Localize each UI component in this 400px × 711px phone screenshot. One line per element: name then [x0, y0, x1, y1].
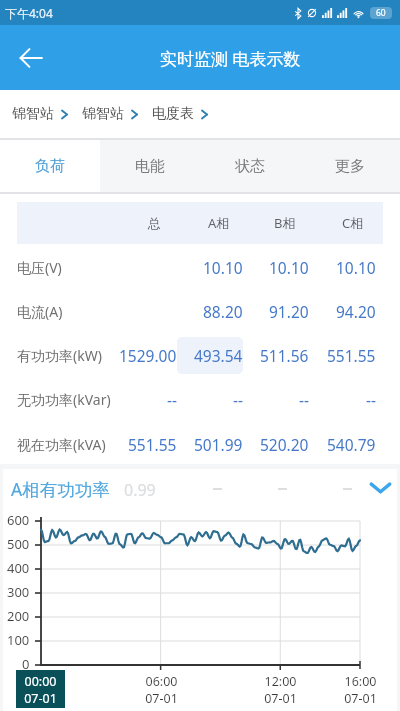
staticText: 更多 — [335, 157, 365, 176]
staticText: 下午4:04 — [5, 5, 53, 21]
staticText: 88.20 — [203, 301, 243, 322]
staticText: 551.55 — [327, 345, 376, 366]
staticText: 400 — [7, 559, 30, 577]
button[interactable]: 电度表 — [152, 105, 222, 123]
staticText: 94.20 — [336, 301, 376, 322]
staticText: C相 — [342, 214, 364, 232]
staticText: 10.10 — [336, 257, 376, 278]
button[interactable]: 负荷 — [0, 140, 100, 192]
staticText: 16:00 07-01 — [344, 673, 377, 706]
staticText: -- — [299, 389, 309, 410]
staticText: 负荷 — [35, 157, 65, 176]
staticText: 10.10 — [203, 257, 243, 278]
staticText: 电度表 — [152, 105, 194, 123]
staticText: 实时监测 电表示数 — [160, 47, 301, 70]
staticText: 有功功率(kW) — [17, 346, 102, 365]
staticText: 电压(V) — [17, 258, 62, 277]
staticText: 锦智站 — [82, 105, 124, 123]
staticText: 60 — [376, 7, 386, 19]
staticText: 状态 — [235, 157, 265, 176]
staticText: 电能 — [135, 157, 165, 176]
staticText: 无功功率(kVar) — [17, 390, 111, 409]
staticText: 0 — [22, 655, 30, 673]
staticText: 100 — [7, 631, 30, 649]
staticText: 1529.00 — [119, 345, 177, 366]
staticText: 06:00 07-01 — [145, 673, 178, 706]
staticText: 电流(A) — [17, 302, 63, 321]
staticText: 493.54 — [194, 345, 243, 366]
button[interactable]: 电能 — [100, 140, 200, 192]
staticText: 总 — [148, 215, 161, 231]
staticText: 12:00 07-01 — [264, 673, 297, 706]
staticText: 600 — [7, 511, 30, 529]
button[interactable]: 状态 — [200, 140, 300, 192]
staticText: 500 — [7, 535, 30, 553]
button[interactable]: Collapse — [365, 472, 395, 502]
staticText: 501.99 — [194, 434, 243, 455]
button[interactable]: 锦智站 — [12, 105, 82, 123]
staticText: 91.20 — [269, 301, 309, 322]
staticText: 540.79 — [327, 434, 376, 455]
staticText: 300 — [7, 583, 30, 601]
staticText: 0.99 — [124, 479, 156, 501]
staticText: B相 — [274, 214, 296, 232]
staticText: A相 — [208, 214, 230, 232]
staticText: 10.10 — [269, 257, 309, 278]
staticText: 511.56 — [260, 345, 309, 366]
staticText: 视在功率(kVA) — [17, 435, 106, 454]
staticText: -- — [366, 389, 376, 410]
staticText: 00:00 07-01 — [24, 673, 57, 706]
button[interactable]: 锦智站 — [82, 105, 152, 123]
staticText: 锦智站 — [12, 105, 54, 123]
button[interactable]: 更多 — [300, 140, 400, 192]
staticText: A相有功功率 — [11, 477, 110, 501]
staticText: 551.55 — [128, 434, 177, 455]
staticText: 200 — [7, 607, 30, 625]
staticText: 520.20 — [260, 434, 309, 455]
staticText: -- — [233, 389, 243, 410]
staticText: -- — [167, 389, 177, 410]
button[interactable]: Back — [9, 36, 53, 80]
